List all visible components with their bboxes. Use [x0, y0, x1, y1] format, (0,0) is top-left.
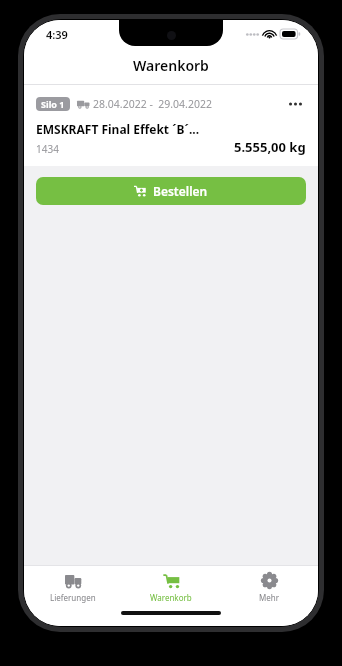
button[interactable]: Mehr Optionen — [284, 93, 306, 115]
staticText: Bestellen — [153, 183, 208, 199]
staticText: 4:39 — [46, 27, 68, 42]
button[interactable]: Lieferungen — [24, 566, 122, 608]
button[interactable]: Mehr — [220, 566, 318, 608]
staticText: Warenkorb — [133, 56, 209, 75]
staticText: 28.04.2022 - 29.04.2022 — [93, 97, 212, 111]
staticText: 1434 — [36, 142, 59, 156]
staticText: Warenkorb — [150, 592, 192, 603]
staticText: Silo 1 — [41, 98, 65, 110]
staticText: EMSKRAFT Final Effekt ´B´... — [36, 121, 200, 137]
staticText: Lieferungen — [50, 592, 96, 603]
button[interactable]: Silo 1 — [24, 85, 318, 166]
button[interactable]: Warenkorb — [122, 566, 220, 608]
staticText: 5.555,00 kg — [234, 138, 306, 156]
button[interactable]: Bestellen — [36, 177, 306, 205]
staticText: Mehr — [259, 592, 280, 603]
